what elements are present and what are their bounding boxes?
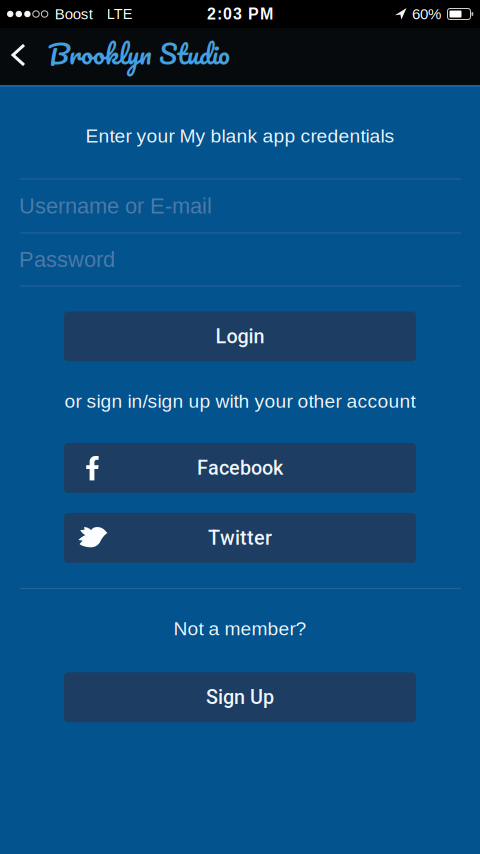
staticText: or sign in/sign up with your other accou… xyxy=(64,390,415,412)
staticText: 2:03 PM xyxy=(207,5,273,23)
staticText: Username or E-mail xyxy=(19,194,212,218)
staticText: Boost xyxy=(55,6,93,22)
button[interactable]: Username or E-mail xyxy=(0,179,480,232)
staticText: Not a member? xyxy=(173,618,306,639)
staticText: Twitter xyxy=(208,526,272,549)
staticText: 60% xyxy=(412,6,441,22)
staticText: Password xyxy=(19,247,115,272)
button[interactable]: Facebook xyxy=(64,443,416,493)
button[interactable] xyxy=(0,45,26,68)
button[interactable]: Twitter xyxy=(64,513,416,563)
staticText: Sign Up xyxy=(206,686,274,709)
button[interactable]: Password xyxy=(0,233,480,285)
staticText: Login xyxy=(215,325,264,348)
button[interactable]: Sign Up xyxy=(64,672,416,722)
staticText: Facebook xyxy=(197,456,283,479)
staticText: Enter your My blank app credentials xyxy=(85,125,394,146)
staticText: LTE xyxy=(107,6,133,22)
staticText: Brooklyn Studio xyxy=(48,31,230,76)
button[interactable]: Login xyxy=(64,311,416,361)
